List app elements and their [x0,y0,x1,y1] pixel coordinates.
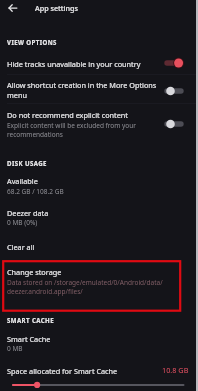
staticText: Change storage [7,267,62,277]
button[interactable] [0,52,198,75]
staticText: 10.8 GB [162,365,189,375]
staticText: VIEW OPTIONS [7,38,57,46]
staticText: Data stored on /storage/emulated/0/Andro… [7,278,163,295]
staticText: Clear all [7,242,35,252]
staticText: Hide tracks unavailable in your country [7,59,141,69]
button[interactable]: Back [4,0,22,17]
staticText: Deezer data [7,208,49,218]
button[interactable] [0,238,198,256]
button[interactable] [0,330,198,357]
button[interactable]: Switch off [162,115,188,133]
button[interactable]: Switch on [162,54,188,72]
button[interactable] [0,76,198,102]
staticText: Smart Cache [7,334,51,344]
staticText: SMART CACHE [7,316,55,324]
staticText: 0 MB [7,344,23,353]
button[interactable] [0,172,198,199]
staticText: 0 MB (0%) [7,218,38,227]
staticText: 68.2 GB / 108.2 GB [7,187,64,196]
staticText: Explicit content will be excluded from y… [7,121,137,138]
staticText: Space allocated for Smart Cache [7,366,118,376]
staticText: Available [7,176,38,186]
staticText: DISK USAGE [7,159,47,167]
button[interactable] [0,203,198,230]
button[interactable] [0,106,198,142]
staticText: App settings [35,3,79,13]
button[interactable]: Switch off [162,82,188,100]
button[interactable] [0,263,198,299]
staticText: Do not recommend explicit content [7,110,128,120]
staticText: Allow shortcut creation in the More Opti… [7,80,157,100]
